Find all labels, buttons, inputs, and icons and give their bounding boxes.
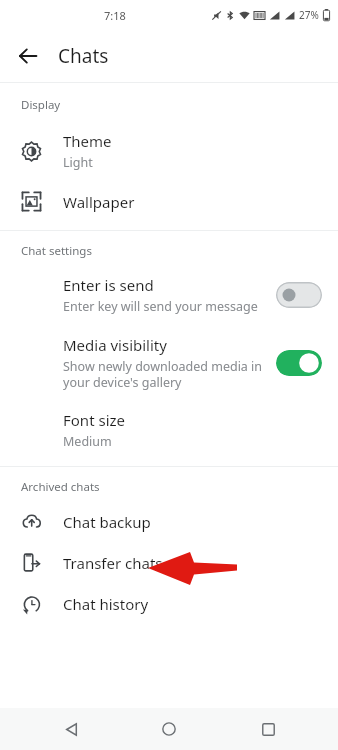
button[interactable]: Media visibility [0, 325, 338, 400]
staticText: Chat settings [21, 243, 92, 259]
staticText: Wallpaper [63, 192, 135, 212]
button[interactable]: Enter is send [0, 265, 338, 325]
button[interactable]: Chat history [0, 583, 338, 624]
staticText: Media visibility [63, 335, 167, 355]
staticText: Light [63, 154, 93, 171]
button[interactable]: Toggle on [276, 350, 322, 376]
button[interactable]: Wallpaper [0, 181, 338, 222]
staticText: Archived chats [21, 479, 100, 495]
button[interactable]: Back [8, 36, 48, 76]
button[interactable]: Home [141, 708, 197, 750]
staticText: Medium [63, 433, 112, 450]
staticText: Enter is send [63, 275, 154, 295]
button[interactable]: Recents [240, 708, 296, 750]
staticText: Chat backup [63, 512, 151, 532]
button[interactable]: Chat backup [0, 501, 338, 542]
staticText: 27% [299, 8, 319, 22]
button[interactable]: Font size [0, 400, 338, 460]
button[interactable]: Back [43, 708, 99, 750]
staticText: Chat history [63, 594, 149, 614]
staticText: Show newly downloaded media in your devi… [63, 358, 263, 390]
staticText: Enter key will send your message [63, 298, 258, 315]
button[interactable]: Toggle off [276, 282, 322, 308]
staticText: Chats [58, 43, 109, 69]
staticText: Transfer chats [63, 553, 163, 573]
button[interactable]: Transfer chats [0, 542, 338, 583]
staticText: 7:18 [104, 8, 126, 23]
staticText: Theme [63, 131, 112, 151]
button[interactable]: Theme [0, 121, 338, 181]
staticText: Display [21, 97, 61, 113]
staticText: Font size [63, 410, 126, 430]
